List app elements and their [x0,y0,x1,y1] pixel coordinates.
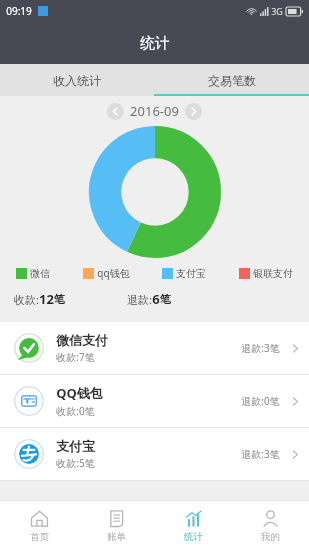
button[interactable]: QQ钱包 [0,375,309,427]
staticText: 退款:0笔 [241,394,280,408]
staticText: 收款:0笔 [56,404,95,418]
button[interactable]: 账单 [78,501,155,550]
staticText: 收入统计 [53,73,101,88]
staticText: 笔 [54,292,65,306]
staticText: 收款:5笔 [56,456,95,470]
staticText: 账单 [107,531,126,543]
button[interactable]: 交易笔数 [154,64,309,96]
button[interactable]: Next month [185,103,202,120]
staticText: 笔 [160,292,171,306]
button[interactable]: 我的 [232,501,309,550]
staticText: 支付宝 [176,267,206,280]
staticText: 支付宝 [56,438,95,454]
staticText: 统计 [140,34,170,53]
button[interactable]: 首页 [0,501,78,550]
staticText: 统计 [184,531,203,543]
staticText: qq钱包 [97,266,130,280]
button[interactable]: 统计 [155,501,232,550]
staticText: 微信 [30,267,50,280]
staticText: 6 [152,290,160,308]
staticText: 3G [271,5,283,17]
button[interactable]: 微信支付 [0,322,309,374]
staticText: 09:19 [6,4,32,18]
staticText: 银联支付 [253,267,293,280]
staticText: 退款:3笔 [241,447,280,461]
staticText: 收款:7笔 [56,350,95,364]
staticText: 退款:3笔 [241,341,280,355]
staticText: 退款: [127,292,152,307]
button[interactable]: 支付宝 [0,428,309,480]
staticText: 首页 [30,531,49,543]
staticText: 2016-09 [130,102,179,120]
staticText: 收款: [14,292,39,307]
staticText: 我的 [261,531,280,543]
staticText: QQ钱包 [56,384,103,402]
button[interactable]: 收入统计 [0,64,154,96]
staticText: 交易笔数 [208,73,256,88]
button[interactable]: Previous month [107,103,124,120]
staticText: 微信支付 [56,332,108,348]
staticText: 12 [39,290,54,308]
